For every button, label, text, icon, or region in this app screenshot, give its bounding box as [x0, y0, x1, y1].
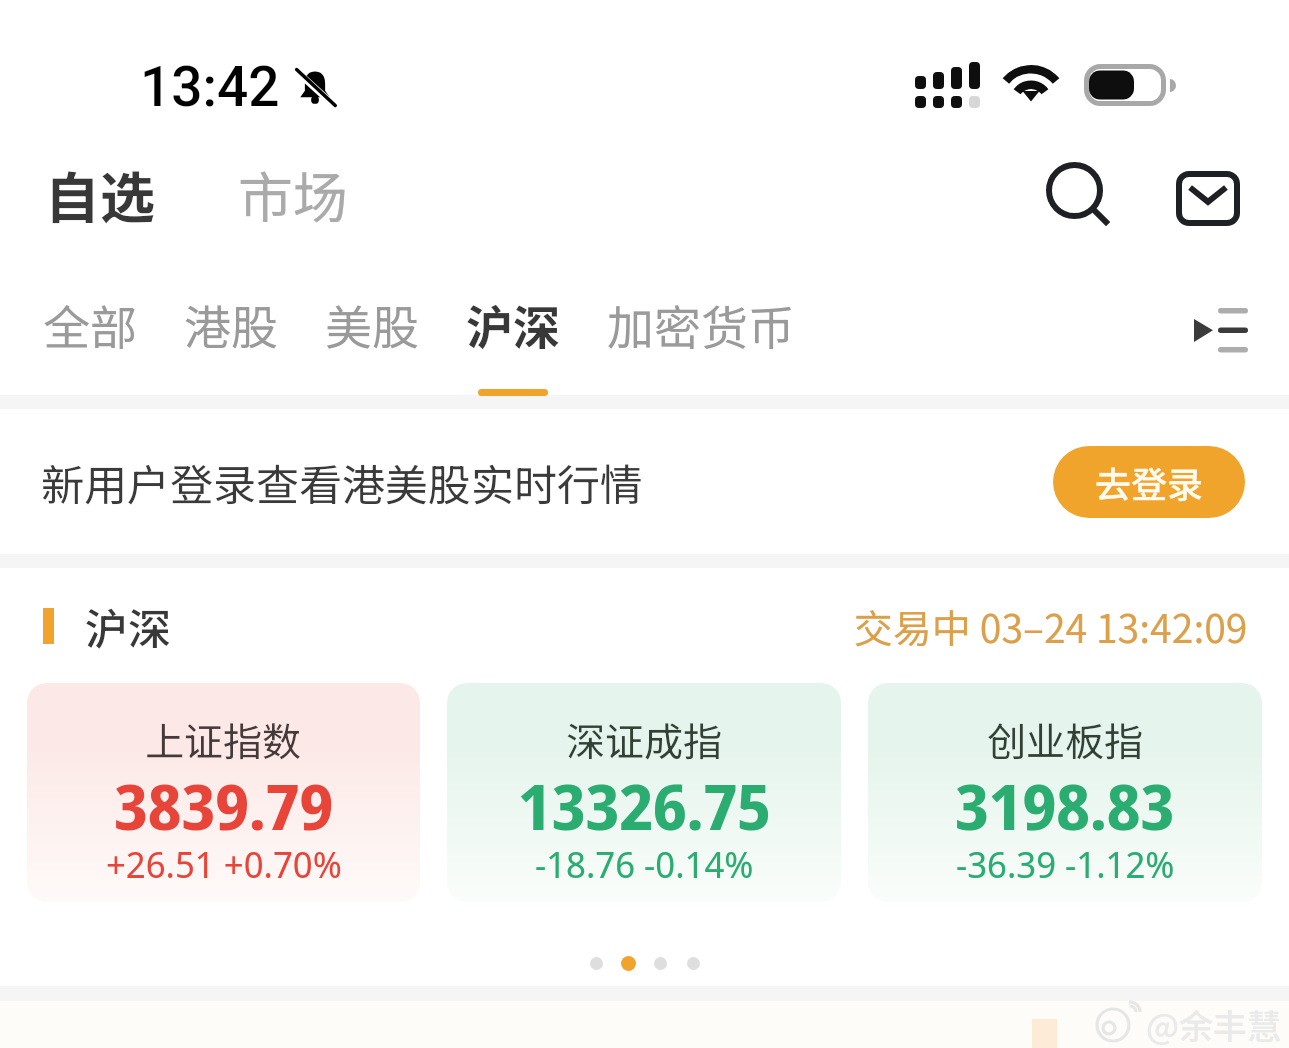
staticText: 上证指数	[145, 711, 302, 767]
staticText: 加密货币	[607, 290, 795, 358]
button[interactable]: 创业板指	[868, 683, 1262, 902]
staticText: 市场	[238, 154, 349, 228]
staticText: 沪深	[466, 290, 560, 358]
button[interactable]: Search	[1033, 159, 1125, 233]
button[interactable]: 市场	[238, 154, 349, 228]
staticText: @余丰慧	[1146, 1000, 1282, 1048]
staticText: 深证成指	[566, 711, 723, 767]
staticText: +26.51 +0.70%	[106, 838, 342, 888]
button[interactable]: Sort list	[1181, 295, 1261, 365]
staticText: 交易中 03–24 13:42:09	[854, 598, 1248, 654]
staticText: 自选	[45, 154, 156, 228]
staticText: 全部	[43, 290, 137, 358]
staticText: 创业板指	[987, 711, 1144, 767]
button[interactable]: 加密货币	[607, 290, 795, 389]
staticText: 沪深	[85, 595, 171, 657]
button[interactable]: 全部	[43, 290, 137, 389]
staticText: 13:42	[140, 55, 280, 119]
staticText: 去登录	[1095, 456, 1204, 508]
button[interactable]: 沪深	[466, 290, 560, 389]
staticText: 3839.79	[114, 764, 334, 848]
staticText: 13326.75	[518, 764, 771, 848]
button[interactable]: 自选	[45, 154, 156, 228]
staticText: 美股	[325, 290, 419, 358]
staticText: 新用户登录查看港美股实时行情	[41, 451, 643, 513]
staticText: 3198.83	[955, 764, 1175, 848]
button[interactable]: 深证成指	[447, 683, 841, 902]
staticText: 港股	[184, 290, 278, 358]
staticText: -36.39 -1.12%	[956, 838, 1175, 888]
button[interactable]: 上证指数	[27, 683, 420, 902]
button[interactable]: 港股	[184, 290, 278, 389]
button[interactable]: 美股	[325, 290, 419, 389]
button[interactable]: 去登录	[1053, 446, 1245, 518]
button[interactable]: Messages	[1162, 161, 1254, 235]
staticText: -18.76 -0.14%	[535, 838, 754, 888]
